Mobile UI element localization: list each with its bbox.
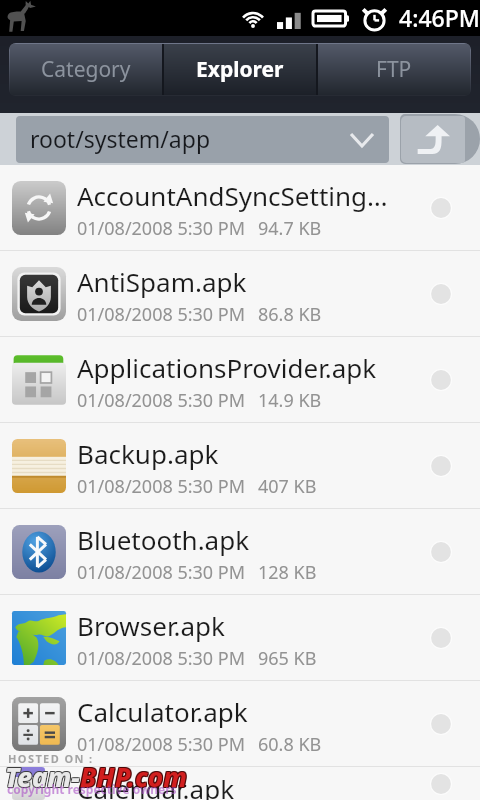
staticText: Team- (6, 758, 81, 793)
button[interactable]: root/system/app (16, 116, 389, 163)
staticText: Explorer (196, 55, 284, 84)
button[interactable]: Select file (422, 595, 480, 680)
staticText: 01/08/2008 5:30 PM (77, 388, 246, 413)
staticText: Bluetooth.apk (77, 522, 250, 557)
button[interactable]: Category (10, 44, 162, 95)
staticText: 60.8 KB (258, 732, 322, 757)
button[interactable]: Select file (422, 251, 480, 336)
staticText: BHP.com (80, 759, 188, 794)
staticText: BHP.com (81, 758, 189, 793)
staticText: BHP.com (80, 758, 188, 793)
staticText: BHP.com (79, 760, 187, 795)
staticText: 01/08/2008 5:30 PM (77, 560, 246, 585)
button[interactable]: Select file (422, 767, 480, 800)
staticText: 01/08/2008 5:30 PM (77, 474, 246, 499)
button[interactable]: Explorer (164, 44, 316, 95)
staticText: 01/08/2008 5:30 PM (77, 732, 246, 757)
staticText: BHP.com (79, 759, 187, 794)
staticText: Team- (5, 758, 80, 793)
staticText: 01/08/2008 5:30 PM (77, 646, 246, 671)
button[interactable]: AccountAndSyncSetting… (0, 165, 480, 250)
button[interactable]: Select file (422, 423, 480, 508)
staticText: 965 KB (258, 646, 317, 671)
button[interactable]: Calendar.apk (0, 767, 480, 800)
staticText: Team- (4, 758, 79, 793)
staticText: copyright respective owners (7, 781, 177, 797)
button[interactable]: Up one level (401, 116, 465, 163)
staticText: Calculator.apk (77, 694, 248, 729)
staticText: HOSTED ON : (8, 751, 94, 766)
button[interactable]: Browser.apk (0, 595, 480, 680)
staticText: BHP.com (79, 758, 187, 793)
staticText: root/system/app (30, 123, 211, 154)
staticText: Backup.apk (77, 436, 219, 471)
staticText: Team- (4, 759, 79, 794)
staticText: 94.7 KB (258, 216, 322, 241)
staticText: ApplicationsProvider.apk (77, 350, 377, 385)
button[interactable]: Select file (422, 509, 480, 594)
staticText: Team- (6, 759, 81, 794)
staticText: Browser.apk (77, 608, 225, 643)
button[interactable]: FTP (318, 44, 470, 95)
button[interactable]: Select file (422, 337, 480, 422)
staticText: 86.8 KB (258, 302, 322, 327)
staticText: Calendar.apk (77, 771, 235, 800)
staticText: BHP.com (81, 759, 189, 794)
button[interactable]: ApplicationsProvider.apk (0, 337, 480, 422)
button[interactable]: AntiSpam.apk (0, 251, 480, 336)
button[interactable]: Backup.apk (0, 423, 480, 508)
button[interactable]: Calculator.apk (0, 681, 480, 766)
staticText: Team- (4, 760, 79, 795)
staticText: 4:46PM (399, 2, 480, 33)
staticText: 407 KB (258, 474, 317, 499)
staticText: FTP (376, 55, 412, 84)
staticText: Category (41, 55, 131, 84)
staticText: Team- (5, 760, 80, 795)
staticText: Team- (5, 759, 80, 794)
staticText: BHP.com (80, 760, 188, 795)
staticText: 14.9 KB (258, 388, 322, 413)
staticText: 01/08/2008 5:30 PM (77, 216, 246, 241)
staticText: AntiSpam.apk (77, 264, 247, 299)
staticText: AccountAndSyncSetting… (77, 178, 388, 213)
button[interactable]: Bluetooth.apk (0, 509, 480, 594)
staticText: BHP.com (81, 760, 189, 795)
staticText: 01/08/2008 5:30 PM (77, 302, 246, 327)
button[interactable]: Select file (422, 681, 480, 766)
button[interactable]: Select file (422, 165, 480, 250)
staticText: 128 KB (258, 560, 317, 585)
staticText: Team- (6, 760, 81, 795)
